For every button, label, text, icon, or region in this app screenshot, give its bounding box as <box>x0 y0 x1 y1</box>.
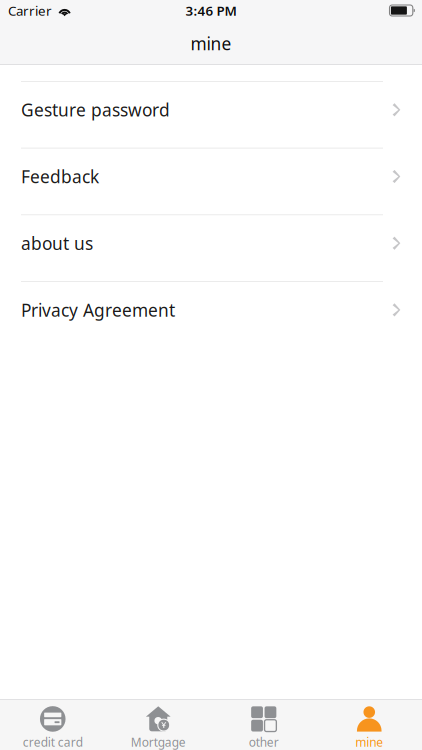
button[interactable]: Feedback <box>0 148 422 214</box>
button[interactable]: other <box>211 700 316 750</box>
staticText: about us <box>21 232 93 255</box>
staticText: Mortgage <box>131 734 186 750</box>
staticText: other <box>249 734 279 750</box>
staticText: mine <box>190 32 231 55</box>
button[interactable]: Mortgage <box>105 700 211 750</box>
staticText: Feedback <box>21 165 99 188</box>
button[interactable]: Privacy Agreement <box>0 281 422 348</box>
button[interactable]: Gesture password <box>0 81 422 148</box>
button[interactable]: mine <box>316 700 422 750</box>
staticText: mine <box>355 734 383 750</box>
button[interactable]: about us <box>0 214 422 281</box>
button[interactable]: credit card <box>0 700 105 750</box>
staticText: Carrier <box>8 2 52 19</box>
staticText: Privacy Agreement <box>21 298 175 321</box>
staticText: Gesture password <box>21 98 170 121</box>
staticText: 3:46 PM <box>185 2 236 19</box>
staticText: credit card <box>23 734 83 750</box>
